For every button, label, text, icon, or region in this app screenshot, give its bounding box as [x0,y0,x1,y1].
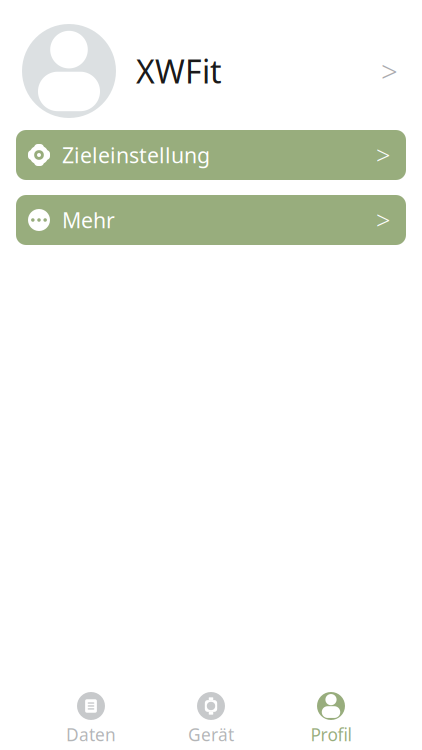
staticText: XWFit [136,50,222,92]
button[interactable]: Daten [31,693,151,745]
staticText: Zieleinstellung [62,141,210,169]
button[interactable]: Zieleinstellung [16,130,406,180]
staticText: Daten [66,723,116,746]
staticText: Gerät [188,723,234,746]
button[interactable]: XWFit [0,12,422,130]
button[interactable]: Gerät [151,693,271,745]
button[interactable]: Mehr [16,195,406,245]
staticText: > [376,203,390,237]
staticText: Mehr [62,206,115,234]
button[interactable]: Profil [271,693,391,745]
staticText: > [381,51,398,90]
staticText: > [376,138,390,172]
staticText: Profil [310,723,351,746]
